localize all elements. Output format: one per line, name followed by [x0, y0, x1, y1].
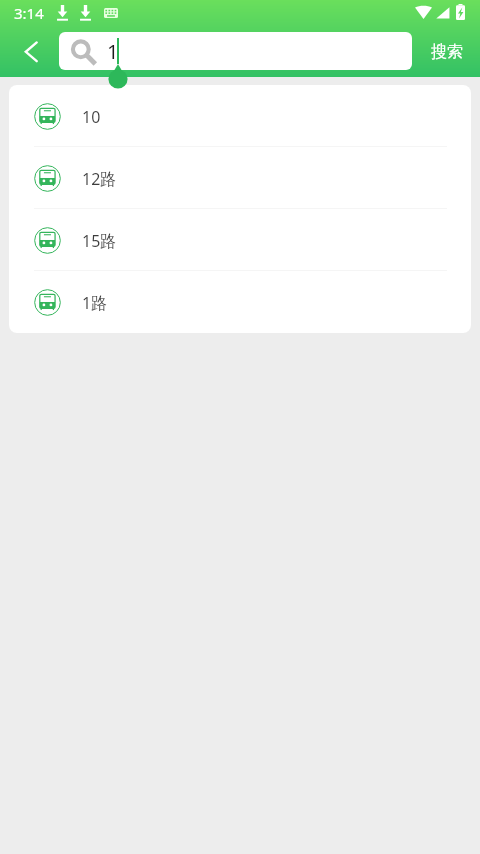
staticText: 1	[107, 38, 119, 65]
staticText: 10	[82, 106, 101, 128]
staticText: 15路	[82, 230, 117, 252]
staticText: 搜索	[431, 42, 463, 62]
button[interactable]: Back	[12, 31, 50, 69]
staticText: 1路	[82, 292, 108, 314]
staticText: 12路	[82, 168, 117, 190]
button[interactable]: 15路	[9, 209, 471, 271]
button[interactable]: 10	[9, 85, 471, 147]
staticText: 3:14	[14, 3, 44, 23]
button[interactable]: 搜索	[418, 0, 480, 77]
button[interactable]: 1路	[9, 271, 471, 333]
button[interactable]: 1	[59, 32, 412, 70]
button[interactable]: 12路	[9, 147, 471, 209]
